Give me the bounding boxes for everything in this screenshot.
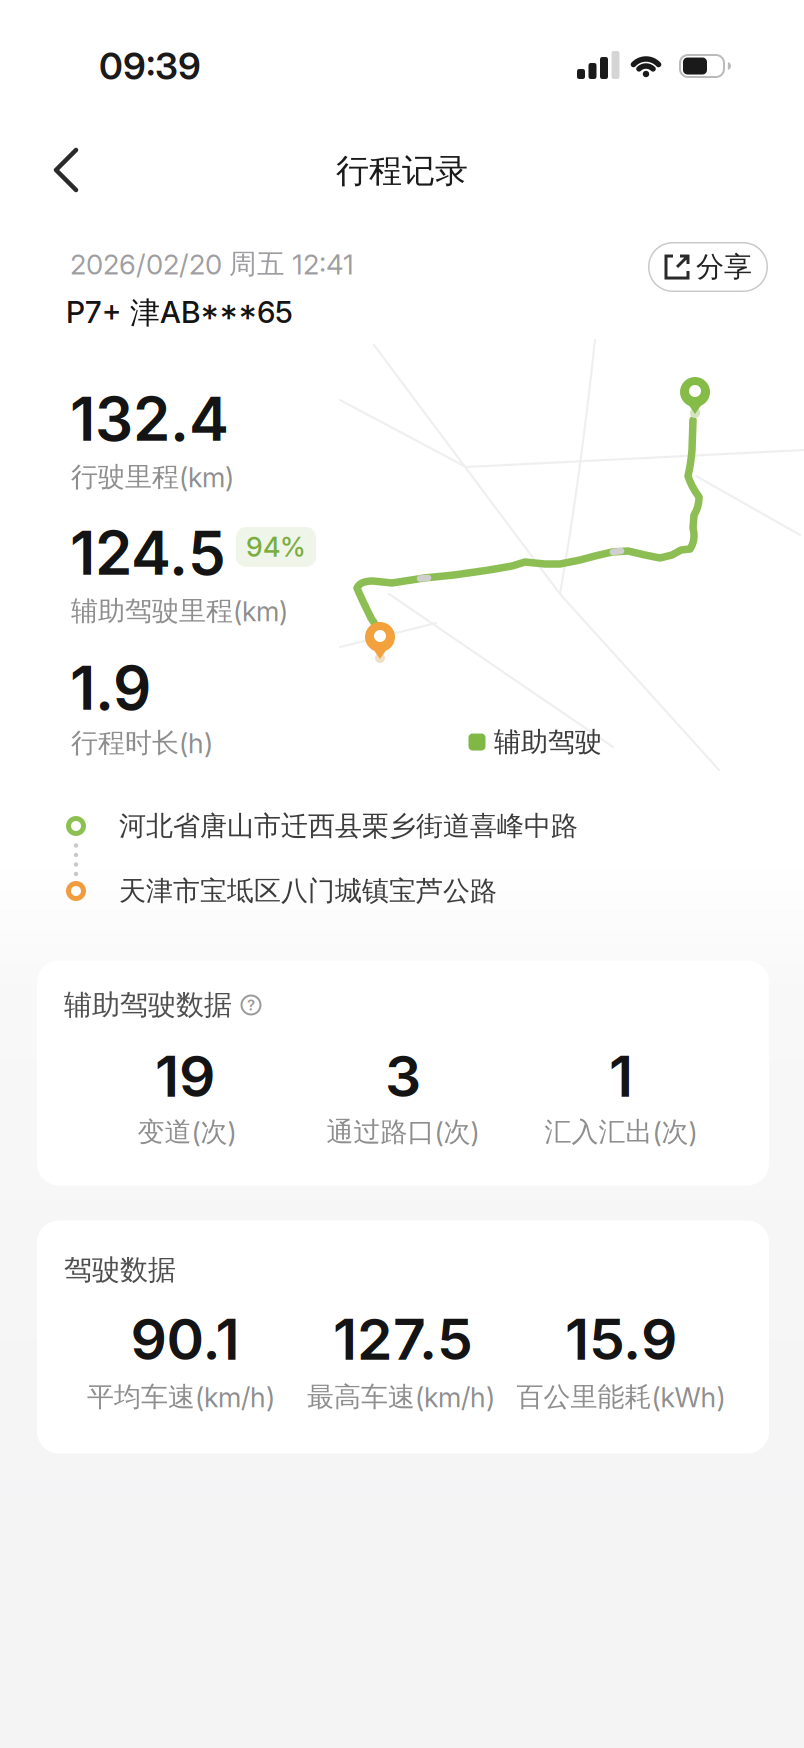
staticText: P7+ 津AB***65 [66,294,293,331]
staticText: 132.4 [70,384,229,454]
staticText: 辅助驾驶 [494,725,602,759]
staticText: 分享 [696,250,752,284]
staticText: 天津市宝坻区八门城镇宝芦公路 [119,874,497,908]
staticText: 09:39 [99,44,201,88]
staticText: 15.9 [565,1305,677,1373]
staticText: 辅助驾驶数据 [64,988,232,1022]
staticText: 行驶里程(km) [71,460,234,494]
staticText: 2026/02/20 周五 12:41 [70,247,354,281]
staticText: 1.9 [70,653,151,723]
staticText: 19 [155,1042,215,1110]
staticText: 行程记录 [336,151,468,191]
staticText: 辅助驾驶里程(km) [71,594,288,628]
button[interactable]: 分享 [648,242,768,292]
staticText: 平均车速(km/h) [87,1380,275,1414]
staticText: 河北省唐山市迁西县栗乡街道喜峰中路 [119,809,578,843]
staticText: 通过路口(次) [326,1115,479,1149]
staticText: 124.5 [70,518,226,588]
staticText: 90.1 [130,1305,239,1373]
staticText: 3 [385,1042,421,1110]
staticText: 最高车速(km/h) [307,1380,495,1414]
staticText: 百公里能耗(kWh) [516,1380,725,1414]
staticText: 变道(次) [137,1115,236,1149]
staticText: ? [247,996,255,1014]
button[interactable] [28,132,104,208]
staticText: 1 [609,1042,633,1110]
staticText: 驾驶数据 [64,1253,176,1287]
staticText: 行程时长(h) [71,726,213,760]
staticText: 汇入汇出(次) [544,1115,697,1149]
staticText: 127.5 [333,1305,473,1373]
button[interactable]: ? [240,994,262,1016]
staticText: 94% [246,531,306,563]
